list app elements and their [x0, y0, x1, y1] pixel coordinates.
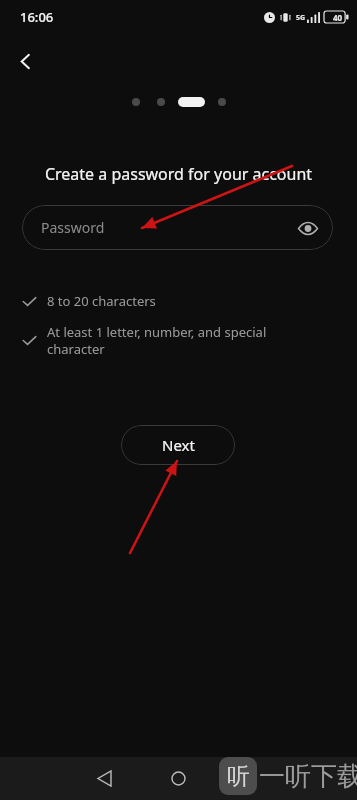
staticText: Create a password for your account [16, 163, 341, 185]
staticText: 一听下载 [259, 760, 357, 793]
staticText: 听 [227, 762, 250, 791]
staticText: Next [162, 435, 195, 455]
button[interactable]: Show password [293, 213, 323, 243]
staticText: Password [41, 218, 105, 237]
button[interactable]: Back [5, 41, 45, 81]
button[interactable]: Next [121, 425, 235, 465]
staticText: 16:06 [20, 8, 54, 26]
staticText: 5G [296, 13, 306, 23]
button[interactable]: Password [22, 205, 333, 250]
button[interactable]: Home [158, 757, 198, 800]
staticText: 40 [333, 12, 343, 23]
staticText: At least 1 letter, number, and special c… [47, 323, 285, 358]
button[interactable]: Back [84, 757, 124, 800]
staticText: 8 to 20 characters [47, 292, 156, 310]
